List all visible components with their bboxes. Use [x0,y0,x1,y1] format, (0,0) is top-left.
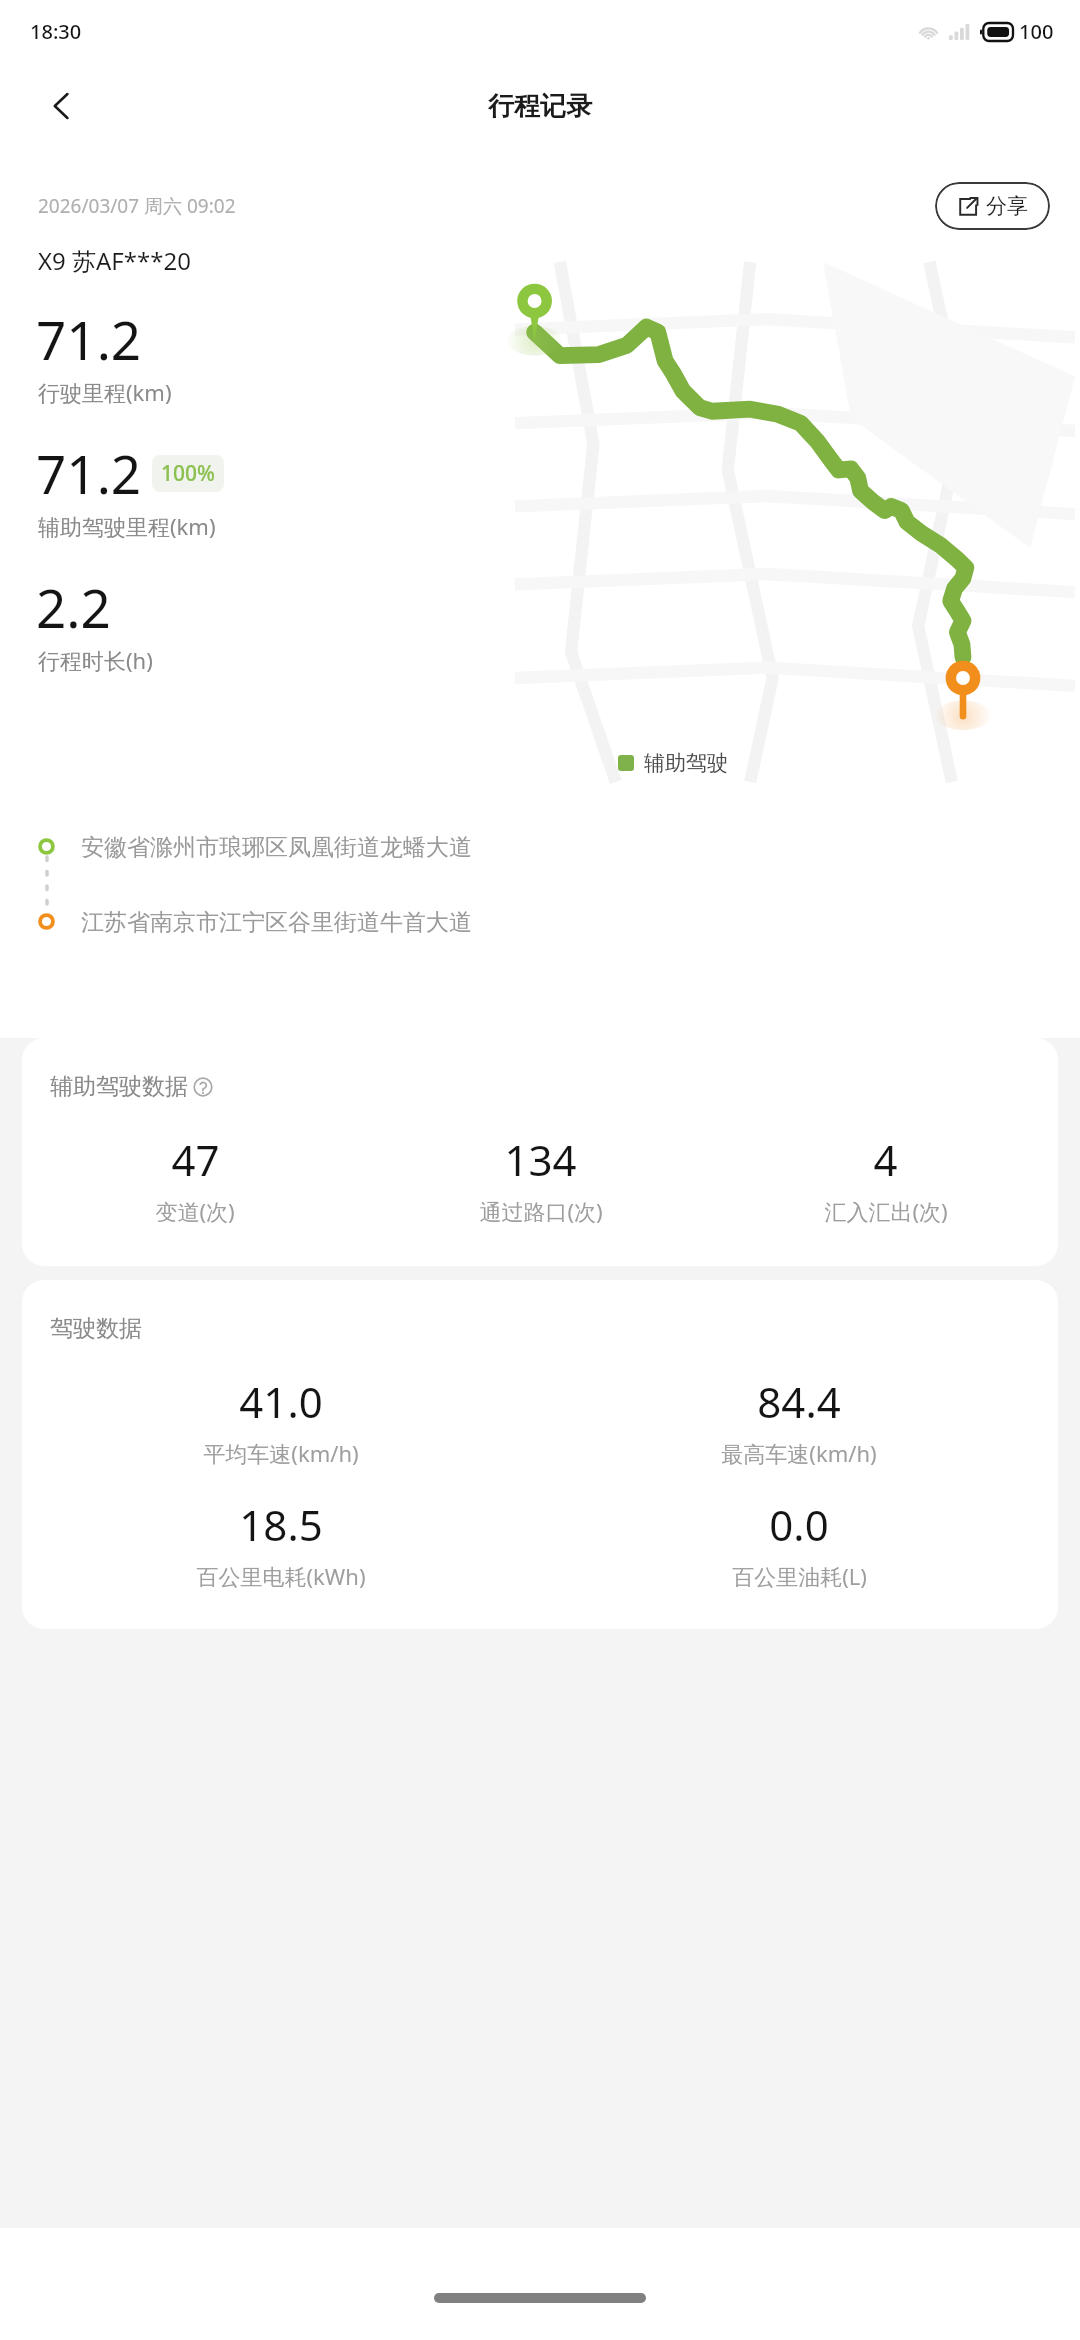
staticText: 71.2 [36,303,142,375]
staticText: 18:30 [30,18,82,45]
staticText: 辅助驾驶里程(km) [38,511,216,541]
staticText: 行程时长(h) [38,645,153,675]
staticText: 100 [1019,18,1054,45]
staticText: 通过路口(次) [479,1196,603,1226]
staticText: 分享 [986,193,1028,219]
staticText: 71.2 [36,437,142,509]
staticText: 汇入汇出(次) [824,1196,948,1226]
staticText: 4 [873,1131,898,1188]
staticText: 安徽省滁州市琅琊区凤凰街道龙蟠大道 [81,833,472,862]
button[interactable]: 辅助驾驶数据 [22,1038,1058,1266]
button[interactable]: 驾驶数据 [22,1280,1058,1629]
staticText: 行程记录 [488,90,592,123]
staticText: 江苏省南京市江宁区谷里街道牛首大道 [81,908,472,937]
staticText: 47 [171,1131,220,1188]
staticText: 平均车速(km/h) [203,1438,359,1468]
staticText: 百公里电耗(kWh) [196,1561,366,1591]
staticText: 2.2 [36,571,111,643]
staticText: 100% [161,459,215,488]
staticText: 0.0 [769,1496,829,1553]
staticText: 驾驶数据 [50,1314,142,1343]
staticText: 134 [504,1131,577,1188]
staticText: 辅助驾驶 [644,750,728,776]
staticText: 辅助驾驶数据 [50,1072,188,1101]
button[interactable]: 说明 [192,1076,214,1098]
staticText: 行驶里程(km) [38,377,172,407]
staticText: 最高车速(km/h) [721,1438,877,1468]
staticText: 百公里油耗(L) [732,1561,867,1591]
staticText: 变道(次) [155,1196,235,1226]
staticText: 84.4 [757,1373,841,1430]
staticText: 41.0 [239,1373,323,1430]
staticText: X9 苏AF***20 [38,244,191,277]
staticText: 2026/03/07 周六 09:02 [38,193,236,219]
button[interactable]: 返回 [36,80,88,132]
staticText: 18.5 [239,1496,323,1553]
button[interactable]: 分享 [935,182,1050,230]
